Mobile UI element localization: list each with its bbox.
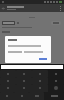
button[interactable]: Key 4 bbox=[0, 77, 16, 84]
button[interactable]: Key 2 bbox=[16, 70, 32, 77]
button[interactable]: Navigate up bbox=[0, 5, 7, 12]
button[interactable]: Key # bbox=[29, 92, 44, 100]
button[interactable]: Key 9 bbox=[32, 84, 48, 92]
button[interactable]: Key bbox=[48, 77, 64, 84]
button[interactable]: Key 8 bbox=[16, 84, 32, 92]
button[interactable]: Key - bbox=[48, 70, 64, 77]
button[interactable]: Key x bbox=[48, 84, 64, 92]
button[interactable]: Key * bbox=[0, 92, 14, 100]
button[interactable]: Key 5 bbox=[16, 77, 32, 84]
button[interactable]: Key 3 bbox=[32, 70, 48, 77]
button[interactable]: More options bbox=[57, 5, 63, 11]
button[interactable] bbox=[51, 21, 61, 25]
button[interactable]: Key 1 bbox=[0, 70, 16, 77]
button[interactable]: Key 6 bbox=[32, 77, 48, 84]
button[interactable]: Key _ bbox=[44, 92, 64, 100]
button[interactable]: Key 0 bbox=[14, 92, 29, 100]
button[interactable]: Key 7 bbox=[0, 84, 16, 92]
button[interactable] bbox=[38, 57, 48, 61]
